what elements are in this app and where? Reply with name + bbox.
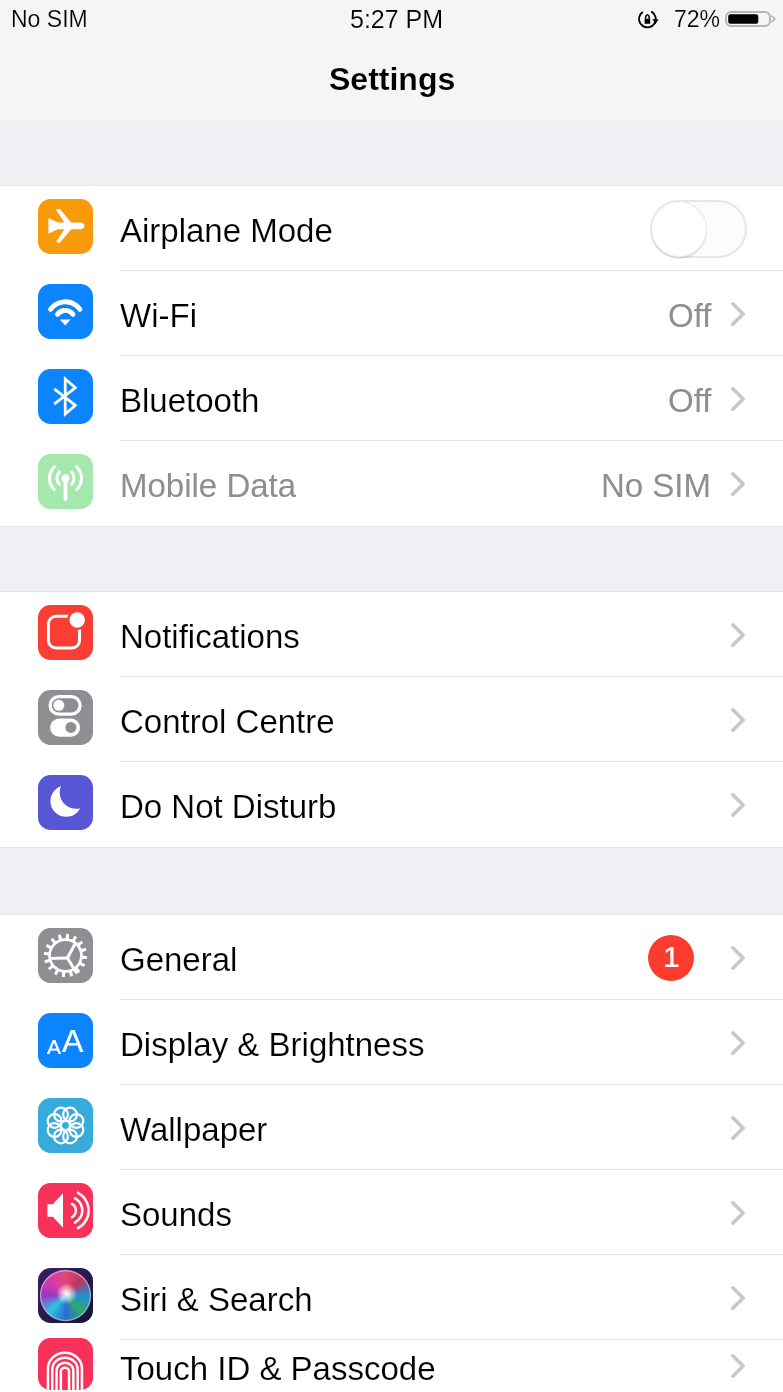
button[interactable]: Wallpaper [0, 1085, 783, 1170]
staticText: Do Not Disturb [120, 788, 337, 825]
staticText: 5:27 PM [350, 5, 444, 33]
button[interactable]: Sounds [0, 1170, 783, 1255]
staticText: Wi-Fi [120, 297, 197, 334]
button[interactable]: General [0, 915, 783, 1000]
staticText: Bluetooth [120, 382, 260, 419]
staticText: 1 [663, 940, 680, 974]
button[interactable]: Airplane Mode [0, 186, 783, 271]
staticText: Settings [329, 61, 456, 97]
staticText: A [47, 1035, 62, 1058]
staticText: Wallpaper [120, 1111, 268, 1148]
staticText: A [62, 1023, 84, 1059]
staticText: Mobile Data [120, 467, 297, 504]
button[interactable]: Do Not Disturb [0, 762, 783, 847]
staticText: Sounds [120, 1196, 232, 1233]
staticText: Off [668, 382, 712, 419]
staticText: Notifications [120, 618, 300, 655]
staticText: Control Centre [120, 703, 335, 740]
staticText: Off [668, 297, 712, 334]
button[interactable]: Wi-Fi [0, 271, 783, 356]
button[interactable]: Mobile Data [0, 441, 783, 526]
button[interactable]: Airplane Mode toggle [650, 200, 747, 258]
staticText: Touch ID & Passcode [120, 1350, 436, 1387]
staticText: 72% [674, 6, 721, 32]
button[interactable]: A [0, 1000, 783, 1085]
staticText: No SIM [601, 467, 712, 504]
staticText: Airplane Mode [120, 212, 333, 249]
button[interactable]: Siri & Search [0, 1255, 783, 1340]
staticText: Siri & Search [120, 1281, 313, 1318]
button[interactable]: Bluetooth [0, 356, 783, 441]
button[interactable]: Notifications [0, 592, 783, 677]
staticText: Display & Brightness [120, 1026, 425, 1063]
button[interactable]: Touch ID & Passcode [0, 1340, 783, 1392]
staticText: No SIM [11, 6, 88, 32]
staticText: General [120, 941, 238, 978]
button[interactable]: Control Centre [0, 677, 783, 762]
